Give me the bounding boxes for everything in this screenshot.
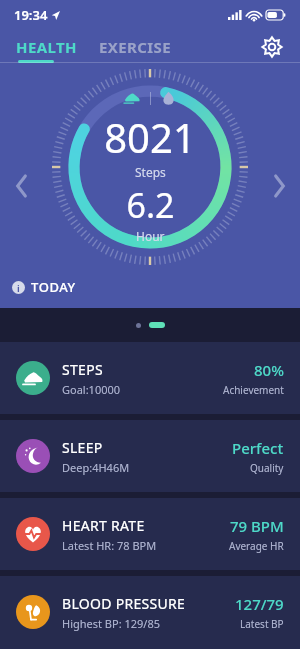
button[interactable]: Next xyxy=(264,171,294,201)
staticText: SLEEP xyxy=(62,438,103,457)
staticText: 19:34 xyxy=(14,6,48,24)
button[interactable]: Settings xyxy=(258,33,286,61)
staticText: 80% xyxy=(254,360,284,380)
staticText: 6.2 xyxy=(126,182,175,228)
staticText: Steps xyxy=(135,164,166,180)
staticText: 127/79 xyxy=(235,594,284,614)
staticText: Latest BP xyxy=(240,617,284,631)
button[interactable]: HEART RATE xyxy=(0,498,300,570)
staticText: Deep:4H46M xyxy=(62,460,130,475)
staticText: HEALTH xyxy=(16,37,77,57)
staticText: Latest HR: 78 BPM xyxy=(62,538,157,553)
button[interactable]: i xyxy=(12,278,76,296)
staticText: Goal:10000 xyxy=(62,382,121,397)
staticText: 79 BPM xyxy=(230,516,284,536)
staticText: TODAY xyxy=(31,278,76,296)
staticText: i xyxy=(17,282,20,294)
button[interactable]: Previous xyxy=(6,171,36,201)
button[interactable]: SLEEP xyxy=(0,420,300,492)
staticText: Perfect xyxy=(232,438,284,458)
button[interactable]: BLOOD PRESSURE xyxy=(0,576,300,648)
staticText: Quality xyxy=(250,461,284,475)
staticText: Average HR xyxy=(229,539,284,553)
staticText: Hour xyxy=(136,228,165,244)
staticText: STEPS xyxy=(62,360,103,379)
staticText: HEART RATE xyxy=(62,516,145,535)
staticText: Highest BP: 129/85 xyxy=(62,616,161,631)
button[interactable]: HEALTH xyxy=(16,37,77,57)
button[interactable]: EXERCISE xyxy=(99,37,172,57)
button[interactable]: STEPS xyxy=(0,342,300,414)
staticText: 8021 xyxy=(104,110,196,164)
staticText: Achievement xyxy=(223,383,284,397)
staticText: BLOOD PRESSURE xyxy=(62,594,186,613)
